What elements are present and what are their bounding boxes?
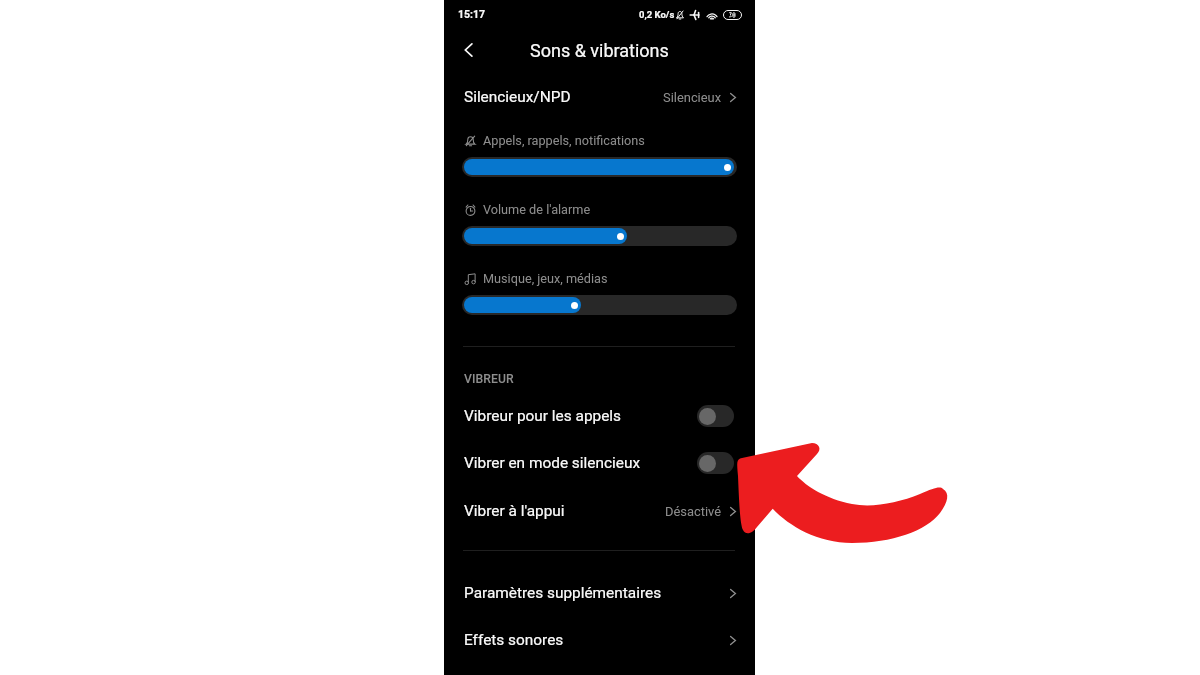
button[interactable] bbox=[462, 157, 737, 177]
button[interactable]: Vibrer à l'appui bbox=[444, 488, 755, 534]
staticText: Sons & vibrations bbox=[530, 40, 669, 61]
staticText: Effets sonores bbox=[464, 631, 564, 649]
button[interactable]: Silencieux/NPD bbox=[444, 74, 755, 120]
staticText: Silencieux/NPD bbox=[464, 88, 571, 106]
staticText: Paramètres supplémentaires bbox=[464, 584, 662, 602]
button[interactable] bbox=[462, 295, 737, 315]
button[interactable]: Vibreur pour les appels bbox=[444, 393, 755, 439]
button[interactable]: Toggle Vibrer en mode silencieux bbox=[697, 452, 734, 474]
staticText: Appels, rappels, notifications bbox=[483, 133, 645, 148]
staticText: VIBREUR bbox=[464, 372, 514, 386]
staticText: Désactivé bbox=[665, 504, 722, 519]
button[interactable]: Paramètres supplémentaires bbox=[444, 570, 755, 616]
staticText: 0,2 Ko/s bbox=[639, 9, 675, 20]
button[interactable]: Effets sonores bbox=[444, 617, 755, 663]
staticText: Vibrer à l'appui bbox=[464, 502, 565, 520]
staticText: 15:17 bbox=[458, 8, 486, 20]
staticText: Vibrer en mode silencieux bbox=[464, 454, 641, 472]
staticText: Silencieux bbox=[663, 90, 722, 105]
staticText: Volume de l'alarme bbox=[483, 202, 591, 217]
staticText: Vibreur pour les appels bbox=[464, 407, 622, 425]
button[interactable]: Back bbox=[453, 35, 483, 65]
button[interactable]: Toggle Vibreur pour les appels bbox=[697, 405, 734, 427]
button[interactable]: Vibrer en mode silencieux bbox=[444, 440, 755, 486]
staticText: Musique, jeux, médias bbox=[483, 271, 608, 286]
button[interactable] bbox=[462, 226, 737, 246]
